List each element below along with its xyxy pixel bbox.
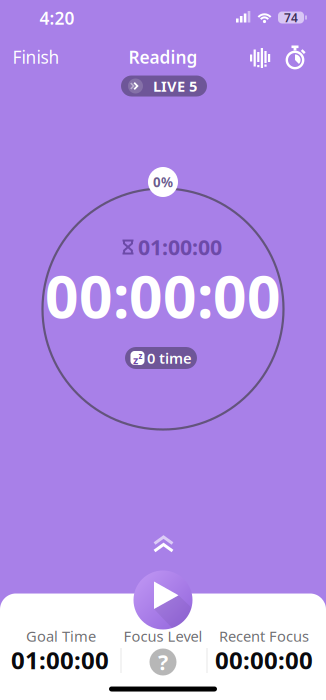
staticText: 0 time <box>147 348 192 368</box>
button[interactable]: LIVE 5 <box>121 75 207 96</box>
button[interactable]: Finish <box>8 42 64 72</box>
staticText: 0% <box>153 173 173 191</box>
staticText: 01:00:00 <box>138 233 222 261</box>
staticText: Focus Level <box>123 626 202 646</box>
button[interactable] <box>133 570 192 629</box>
button[interactable] <box>247 45 273 71</box>
staticText: LIVE 5 <box>153 76 197 96</box>
button[interactable] <box>153 536 173 552</box>
staticText: 00:00:00 <box>215 644 313 676</box>
staticText: Recent Focus <box>219 626 309 646</box>
button[interactable]: ? <box>149 648 176 675</box>
button[interactable]: z <box>125 347 197 369</box>
staticText: 74 <box>284 9 298 25</box>
staticText: 00:00:00 <box>45 256 281 334</box>
staticText: Finish <box>12 45 59 68</box>
button[interactable] <box>282 45 308 71</box>
staticText: 01:00:00 <box>11 644 109 676</box>
staticText: Reading <box>128 45 197 68</box>
staticText: Goal Time <box>26 626 96 646</box>
staticText: z <box>133 353 138 367</box>
staticText: 4:20 <box>39 6 74 29</box>
staticText: z <box>138 351 142 361</box>
staticText: ? <box>158 648 168 676</box>
